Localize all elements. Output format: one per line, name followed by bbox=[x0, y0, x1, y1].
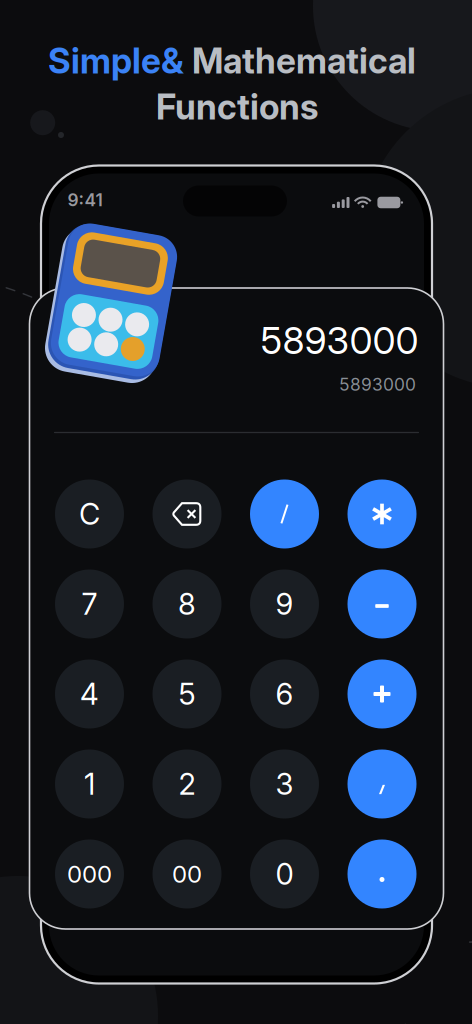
button[interactable]: 8 bbox=[152, 569, 221, 638]
staticText: 4 bbox=[80, 676, 99, 712]
staticText: C bbox=[79, 496, 100, 532]
button[interactable]: 2 bbox=[152, 749, 221, 818]
staticText: 9 bbox=[275, 586, 293, 622]
staticText: Simple& bbox=[48, 40, 184, 82]
staticText: Functions bbox=[156, 86, 318, 128]
staticText: 5893000 bbox=[339, 374, 416, 395]
staticText: 3 bbox=[275, 766, 293, 802]
button[interactable]: Multiply bbox=[347, 479, 416, 548]
button[interactable]: 00 bbox=[152, 839, 221, 908]
button[interactable]: Backspace bbox=[152, 479, 221, 548]
staticText: 0 bbox=[275, 856, 293, 892]
button[interactable]: 3 bbox=[250, 749, 319, 818]
staticText: 5893000 bbox=[260, 318, 418, 363]
button[interactable]: 1 bbox=[55, 749, 124, 818]
button[interactable]: 9 bbox=[250, 569, 319, 638]
button[interactable]: 6 bbox=[250, 659, 319, 728]
staticText: 1 bbox=[84, 766, 95, 802]
staticText: 2 bbox=[178, 766, 195, 802]
staticText: 6 bbox=[275, 676, 293, 712]
button[interactable]: Plus bbox=[347, 659, 416, 728]
button[interactable]: Decimal point bbox=[347, 839, 416, 908]
staticText: Mathematical bbox=[184, 40, 416, 82]
staticText: 9:41 bbox=[67, 189, 102, 210]
button[interactable]: Minus bbox=[347, 569, 416, 638]
staticText: 8 bbox=[178, 586, 196, 622]
button[interactable]: 000 bbox=[55, 839, 124, 908]
button[interactable]: 4 bbox=[55, 659, 124, 728]
staticText: 00 bbox=[172, 859, 202, 888]
button[interactable]: C bbox=[55, 479, 124, 548]
staticText: 5 bbox=[178, 676, 195, 712]
button[interactable]: Divide bbox=[250, 479, 319, 548]
button[interactable]: 0 bbox=[250, 839, 319, 908]
button[interactable]: 7 bbox=[55, 569, 124, 638]
staticText: 7 bbox=[81, 586, 97, 622]
button[interactable]: 5 bbox=[152, 659, 221, 728]
button[interactable]: Comma bbox=[347, 749, 416, 818]
staticText: 000 bbox=[67, 859, 112, 888]
